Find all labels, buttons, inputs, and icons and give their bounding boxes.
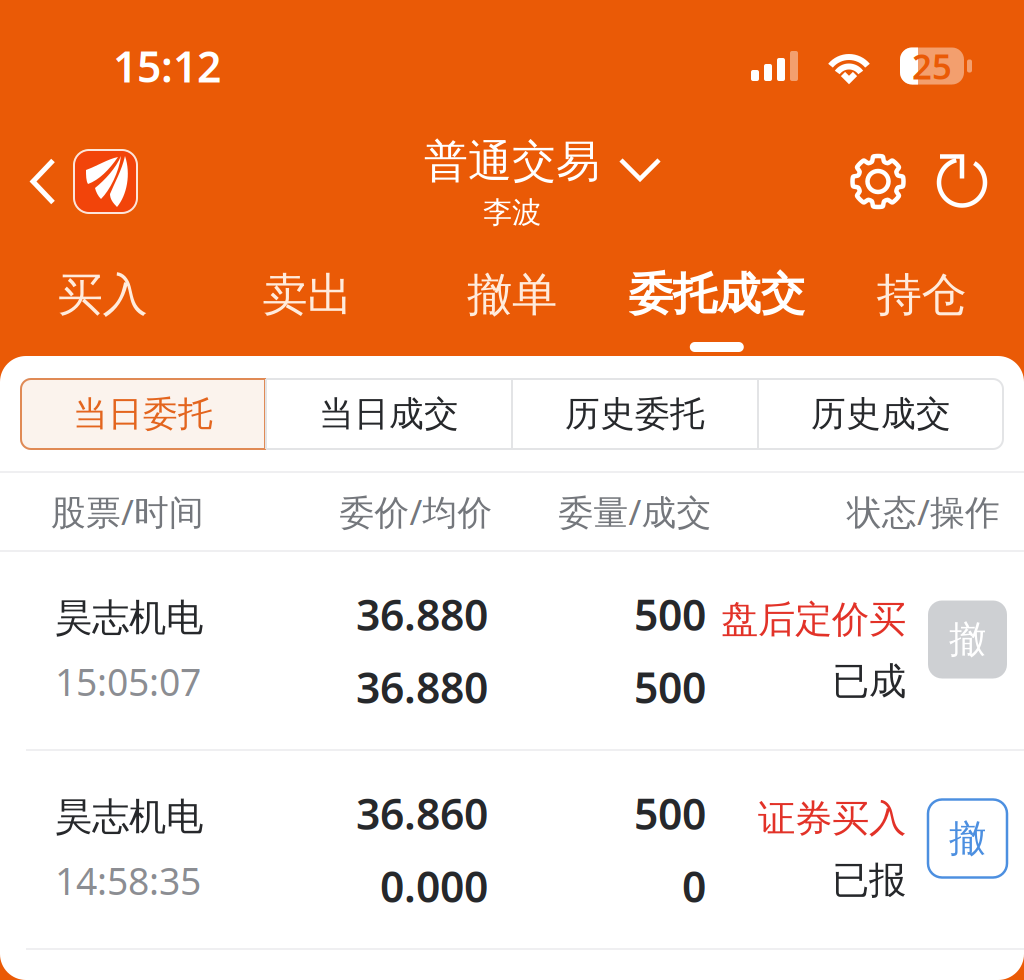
staticText: 0 — [682, 857, 706, 914]
staticText: 已成 — [832, 658, 906, 704]
staticText: 撤 — [949, 617, 986, 662]
staticText: 买入 — [57, 267, 147, 323]
staticText: 委托成交 — [629, 267, 805, 321]
staticText: 14:58:35 — [55, 856, 201, 905]
button[interactable]: 历史委托 — [513, 379, 757, 449]
staticText: 已报 — [832, 857, 906, 903]
staticText: 证券买入 — [758, 796, 906, 841]
staticText: 撤单 — [467, 267, 557, 323]
button[interactable]: 买入 — [0, 245, 205, 356]
button[interactable]: Back — [0, 140, 137, 223]
button[interactable]: 昊志机电 — [0, 552, 1024, 749]
button[interactable]: 当日成交 — [267, 379, 511, 449]
button[interactable]: Settings — [850, 153, 906, 209]
staticText: 委价/均价 — [339, 488, 492, 534]
staticText: 500 — [634, 785, 706, 841]
staticText: 状态/操作 — [847, 488, 1000, 534]
staticText: 500 — [634, 586, 706, 642]
staticText: 持仓 — [877, 267, 967, 323]
button[interactable]: 昊志机电 — [0, 751, 1024, 948]
button[interactable]: 撤单 — [410, 245, 614, 356]
staticText: 36.880 — [356, 586, 488, 642]
staticText: 15:12 — [113, 38, 221, 94]
staticText: 历史委托 — [565, 393, 705, 435]
staticText: 15:05:07 — [55, 657, 201, 706]
button[interactable]: 当日委托 — [21, 379, 265, 449]
staticText: 撤 — [949, 816, 986, 861]
staticText: 昊志机电 — [55, 794, 203, 840]
staticText: 历史成交 — [811, 393, 951, 435]
staticText: 股票/时间 — [51, 488, 204, 534]
staticText: 李波 — [483, 194, 541, 230]
staticText: 委量/成交 — [558, 488, 711, 534]
button[interactable]: Refresh — [936, 152, 990, 210]
button[interactable]: 委托成交 — [614, 245, 819, 356]
staticText: 36.880 — [356, 658, 488, 715]
button[interactable]: 持仓 — [819, 245, 1024, 356]
staticText: 500 — [634, 658, 706, 715]
staticText: 盘后定价买 — [721, 597, 906, 642]
staticText: 昊志机电 — [55, 595, 203, 641]
staticText: 当日成交 — [319, 393, 459, 435]
button[interactable]: 卖出 — [205, 245, 410, 356]
button[interactable]: 历史成交 — [759, 379, 1003, 449]
button[interactable]: 普通交易 — [362, 134, 662, 243]
staticText: 0.000 — [380, 857, 488, 914]
staticText: 25 — [912, 43, 952, 89]
staticText: 普通交易 — [424, 134, 600, 188]
staticText: 36.860 — [356, 785, 488, 841]
staticText: 卖出 — [262, 267, 352, 323]
staticText: 当日委托 — [73, 393, 213, 435]
